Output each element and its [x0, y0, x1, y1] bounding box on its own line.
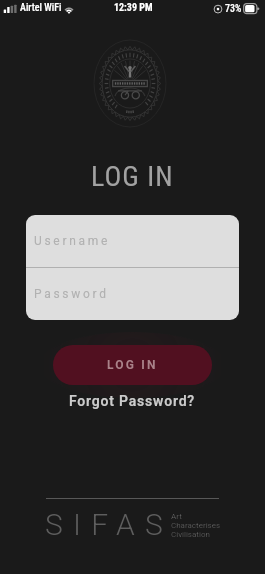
- staticText: Civilisation: [171, 530, 210, 539]
- button[interactable]: Username: [26, 215, 239, 267]
- staticText: Characterises: [171, 521, 221, 530]
- button[interactable]: Forgot Password?: [63, 391, 202, 411]
- button[interactable]: LOG IN: [53, 345, 212, 385]
- staticText: Art: [171, 512, 182, 521]
- staticText: Airtel WiFi: [20, 2, 62, 14]
- staticText: Username: [34, 234, 111, 248]
- staticText: SIFAS: [45, 507, 174, 542]
- staticText: LOG IN: [91, 160, 174, 193]
- staticText: LOG IN: [107, 358, 158, 372]
- button[interactable]: Password: [26, 268, 239, 320]
- staticText: 73%: [225, 3, 242, 15]
- staticText: Forgot Password?: [69, 393, 196, 409]
- staticText: Password: [34, 287, 109, 301]
- staticText: 12:39 PM: [114, 2, 153, 14]
